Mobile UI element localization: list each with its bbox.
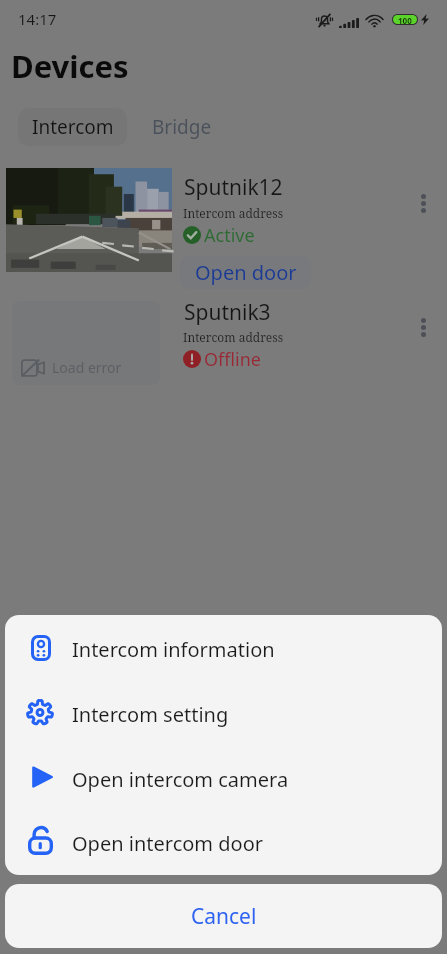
button[interactable]: Bridge bbox=[136, 108, 228, 146]
staticText: Devices bbox=[11, 45, 129, 87]
button[interactable]: Intercom bbox=[18, 108, 127, 146]
staticText: Cancel bbox=[191, 902, 257, 931]
staticText: Intercom information bbox=[72, 636, 275, 663]
button[interactable]: Open door bbox=[180, 256, 311, 289]
staticText: 14:17 bbox=[18, 9, 57, 29]
button[interactable]: More options bbox=[404, 186, 442, 220]
button[interactable]: Intercom information bbox=[5, 615, 442, 680]
staticText: 100 bbox=[398, 15, 412, 24]
staticText: Offline bbox=[204, 347, 262, 372]
button[interactable]: Open intercom door bbox=[5, 810, 442, 875]
staticText: Bridge bbox=[152, 114, 212, 140]
staticText: Intercom address bbox=[183, 329, 284, 345]
staticText: Open intercom door bbox=[72, 830, 263, 857]
staticText: Sputnik3 bbox=[184, 298, 271, 327]
button[interactable]: Open intercom camera bbox=[5, 745, 442, 810]
staticText: Active bbox=[204, 223, 255, 248]
button[interactable]: Intercom setting bbox=[5, 680, 442, 745]
staticText: Intercom address bbox=[183, 205, 284, 221]
button[interactable]: Cancel bbox=[5, 884, 442, 948]
staticText: Open door bbox=[195, 259, 297, 286]
button[interactable]: More options bbox=[404, 310, 442, 344]
staticText: Sputnik12 bbox=[184, 173, 283, 202]
staticText: Load error bbox=[52, 358, 122, 377]
staticText: Open intercom camera bbox=[72, 766, 289, 793]
staticText: Intercom setting bbox=[72, 701, 229, 728]
staticText: Intercom bbox=[32, 114, 114, 140]
